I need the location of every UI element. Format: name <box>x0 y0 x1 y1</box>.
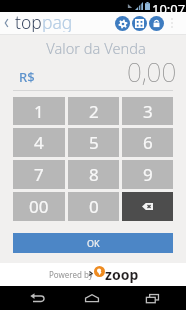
button[interactable]: 7 <box>13 160 65 189</box>
button[interactable]: Lock <box>149 16 164 31</box>
button[interactable]: 3 <box>122 97 173 125</box>
staticText: zoop <box>105 265 139 284</box>
button[interactable]: 1 <box>13 97 65 125</box>
staticText: 6 <box>143 131 153 154</box>
button[interactable]: 6 <box>122 128 173 157</box>
staticText: R$ <box>19 68 35 86</box>
button[interactable]: 00 <box>13 192 65 221</box>
staticText: Powered by <box>49 269 93 280</box>
staticText: pag <box>42 10 73 32</box>
button[interactable]: 4 <box>13 128 65 157</box>
button[interactable]: Backspace <box>122 192 173 221</box>
button[interactable]: Home <box>81 286 103 310</box>
button[interactable]: Back <box>26 286 48 310</box>
button[interactable]: 5 <box>68 128 119 157</box>
staticText: Valor da Venda <box>3 38 186 58</box>
staticText: 1 <box>34 100 44 123</box>
staticText: OK <box>87 237 100 249</box>
button[interactable]: 0 <box>68 192 119 221</box>
staticText: 10:07 <box>152 0 186 12</box>
staticText: 2 <box>89 100 99 123</box>
button[interactable]: Back <box>0 12 12 34</box>
button[interactable]: Settings <box>115 16 130 31</box>
button[interactable]: More options <box>166 12 178 34</box>
staticText: 7 <box>34 163 44 186</box>
staticText: 00 <box>29 195 49 218</box>
staticText: top <box>15 10 42 32</box>
button[interactable]: Keypad <box>132 16 147 31</box>
staticText: 0,00 <box>127 54 177 87</box>
staticText: 3 <box>143 100 153 123</box>
button[interactable]: OK <box>13 233 173 253</box>
button[interactable]: 9 <box>122 160 173 189</box>
staticText: 4 <box>34 131 44 154</box>
staticText: 8 <box>89 163 99 186</box>
button[interactable]: 8 <box>68 160 119 189</box>
button[interactable]: 2 <box>68 97 119 125</box>
button[interactable]: Recents <box>141 286 163 310</box>
staticText: 0 <box>89 195 99 218</box>
staticText: 9 <box>143 163 153 186</box>
staticText: 5 <box>89 131 99 154</box>
